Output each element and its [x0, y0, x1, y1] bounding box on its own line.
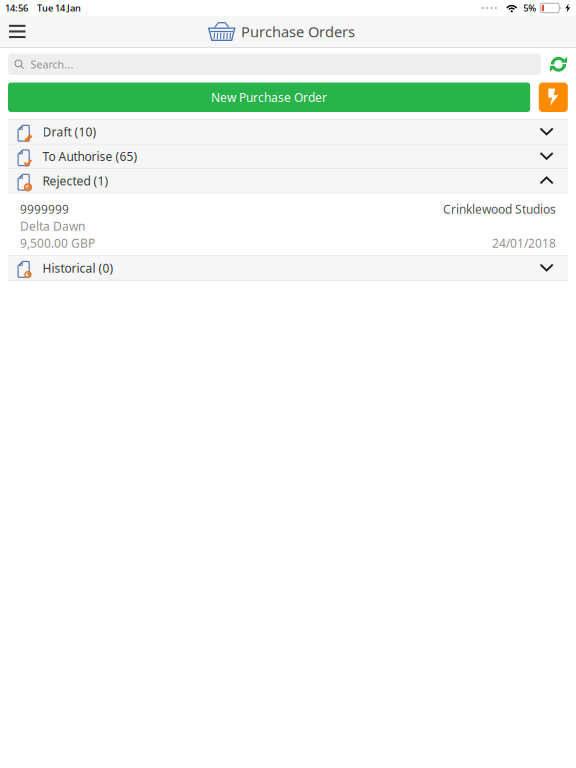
- button[interactable]: New Purchase Order: [8, 82, 530, 112]
- staticText: Tue 14 Jan: [37, 2, 81, 14]
- staticText: 24/01/2018: [492, 235, 556, 251]
- button[interactable]: Menu: [0, 16, 35, 47]
- button[interactable]: To Authorise (65): [8, 145, 568, 168]
- button[interactable]: 9999999: [8, 194, 568, 255]
- staticText: To Authorise (65): [43, 148, 138, 164]
- button[interactable]: Draft (10): [8, 120, 568, 144]
- button[interactable]: Quick action: [539, 82, 568, 112]
- button[interactable]: Rejected (1): [8, 169, 568, 193]
- staticText: 9999999: [20, 201, 69, 217]
- staticText: 5%: [523, 2, 536, 14]
- staticText: 9,500.00 GBP: [20, 235, 95, 251]
- staticText: 14:56: [5, 2, 28, 14]
- staticText: Rejected (1): [43, 173, 109, 189]
- button[interactable]: Refresh: [541, 53, 576, 75]
- button[interactable]: Historical (0): [8, 256, 568, 280]
- staticText: New Purchase Order: [211, 89, 327, 105]
- staticText: Historical (0): [43, 260, 114, 276]
- staticText: Crinklewood Studios: [443, 201, 556, 217]
- staticText: Purchase Orders: [241, 22, 355, 41]
- staticText: Search...: [30, 57, 73, 71]
- staticText: Delta Dawn: [20, 218, 85, 234]
- staticText: Draft (10): [43, 124, 97, 140]
